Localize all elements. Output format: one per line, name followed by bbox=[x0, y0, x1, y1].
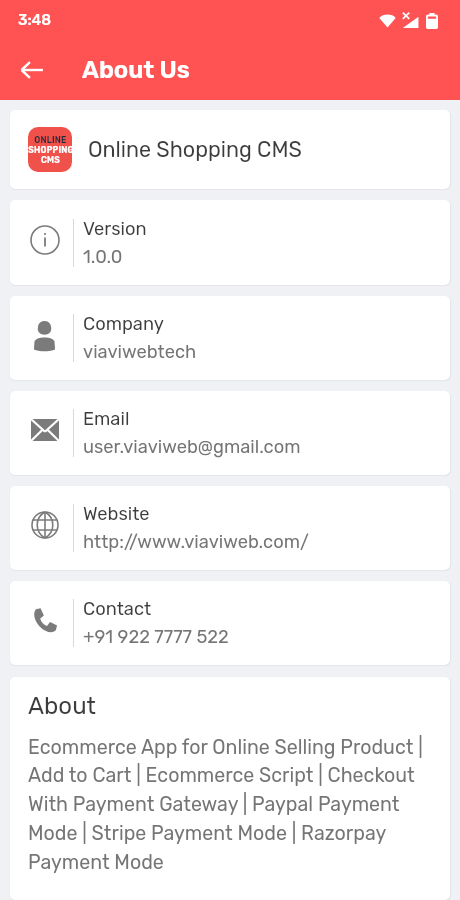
staticText: 3:48 bbox=[18, 11, 52, 29]
button[interactable]: Contact bbox=[10, 581, 450, 665]
staticText: viaviwebtech bbox=[83, 341, 197, 363]
button[interactable]: Email bbox=[10, 391, 450, 475]
staticText: SHOPPING bbox=[28, 145, 72, 155]
button[interactable]: ONLINE bbox=[10, 110, 450, 189]
staticText: Company bbox=[83, 313, 164, 335]
staticText: ONLINE bbox=[34, 135, 67, 145]
staticText: Online Shopping CMS bbox=[88, 137, 302, 162]
staticText: Ecommerce App for Online Selling Product… bbox=[28, 736, 436, 874]
button[interactable]: Version bbox=[10, 200, 450, 285]
staticText: About bbox=[28, 692, 96, 720]
staticText: +91 922 7777 522 bbox=[83, 626, 229, 648]
staticText: CMS bbox=[41, 155, 60, 165]
staticText: Contact bbox=[83, 598, 152, 620]
staticText: Website bbox=[83, 503, 150, 525]
staticText: About Us bbox=[82, 56, 190, 84]
staticText: http://www.viaviweb.com/ bbox=[83, 531, 309, 553]
button[interactable]: Website bbox=[10, 486, 450, 570]
staticText: Email bbox=[83, 408, 130, 430]
button[interactable]: Back bbox=[8, 46, 56, 94]
staticText: 1.0.0 bbox=[83, 246, 123, 268]
staticText: Version bbox=[83, 218, 147, 240]
button[interactable]: Company bbox=[10, 296, 450, 380]
staticText: user.viaviweb@gmail.com bbox=[83, 436, 301, 458]
